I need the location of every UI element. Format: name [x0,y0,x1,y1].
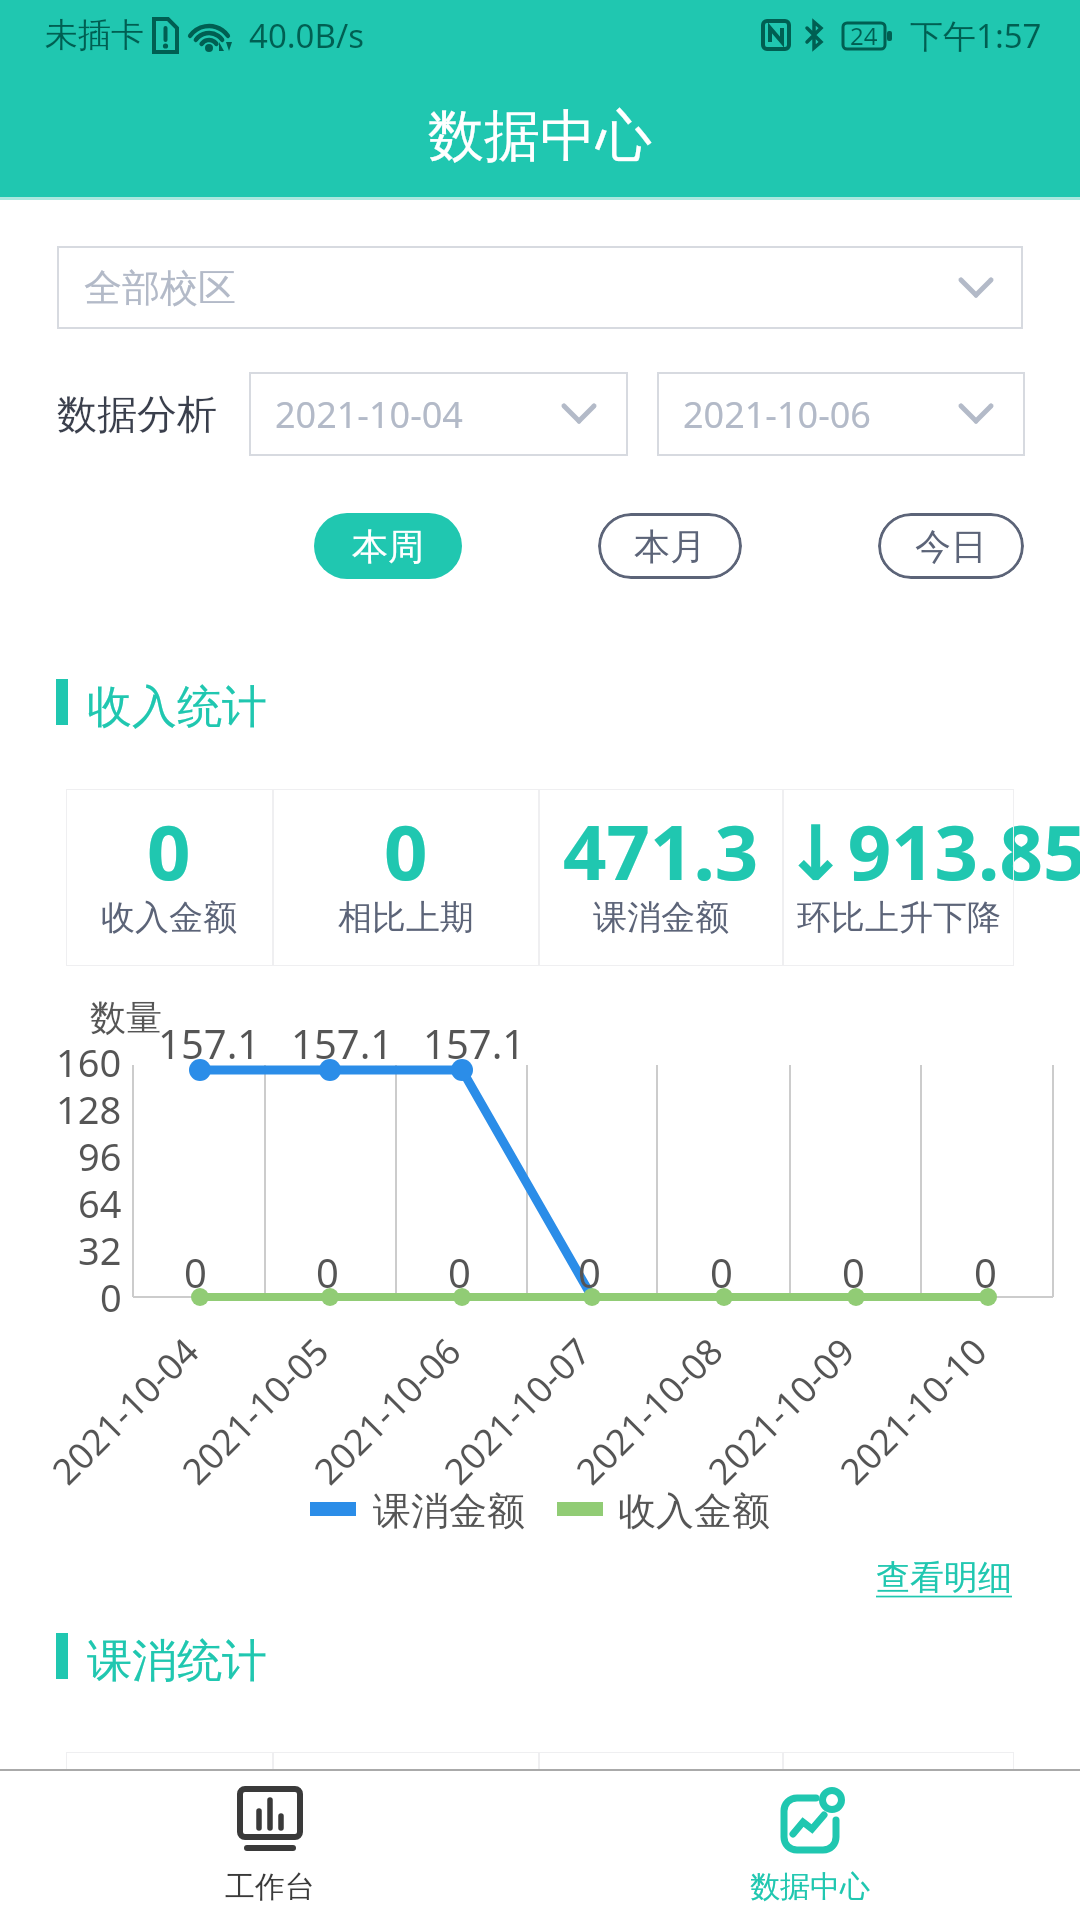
staticText: 收入统计 [87,679,267,725]
staticText: 0 [842,1245,865,1299]
staticText: 本周 [352,524,424,569]
staticText: 下午1:57 [910,13,1042,58]
staticText: 工作台 [225,1868,315,1906]
staticText: 24 [850,19,878,52]
staticText: 0 [384,799,428,903]
staticText: 数量 [90,995,162,1040]
button[interactable]: 本月 [598,513,742,579]
staticText: 收入金额 [618,1487,770,1531]
button[interactable]: 查看明细 [876,1556,1012,1599]
staticText: 2021-10-04 [275,390,463,439]
staticText: 40.0B/s [249,13,365,58]
staticText: 未插卡 [45,14,144,56]
staticText: 0 [100,1271,122,1318]
staticText: 2021-10-06 [683,390,871,439]
staticText: 96 [78,1130,122,1177]
staticText: 0 [448,1245,471,1299]
staticText: 0 [578,1245,601,1299]
button[interactable]: 今日 [878,513,1024,579]
staticText: 0 [147,799,191,903]
staticText: 课消金额 [373,1487,525,1531]
staticText: 全部校区 [84,264,236,312]
staticText: 课消金额 [593,896,729,939]
staticText: 收入金额 [101,896,237,939]
staticText: 查看明细 [876,1556,1012,1599]
button[interactable]: 选择校区 [57,246,1023,329]
staticText: 课消统计 [87,1633,267,1679]
staticText: 64 [78,1177,122,1224]
button[interactable]: 数据中心 [540,1771,1080,1920]
staticText: 数据分析 [57,389,217,439]
button[interactable]: 2021-10-06 [657,372,1025,456]
staticText: 0 [316,1245,339,1299]
staticText: 157.1 [158,1016,261,1070]
button[interactable]: 工作台 [0,1771,540,1920]
staticText: 本月 [634,524,706,569]
staticText: 128 [56,1083,122,1130]
staticText: 157.1 [423,1016,526,1070]
staticText: 环比上升下降 [797,896,1001,939]
staticText: 数据中心 [428,101,652,172]
button[interactable]: 本周 [314,513,462,579]
staticText: 0 [974,1245,997,1299]
staticText: 今日 [915,524,987,569]
staticText: 32 [78,1224,122,1271]
staticText: 160 [56,1036,122,1083]
staticText: 数据中心 [750,1868,870,1906]
staticText: 相比上期 [338,896,474,939]
staticText: 157.1 [291,1016,394,1070]
staticText: ↓913.85 [784,799,1014,903]
staticText: 0 [184,1245,207,1299]
staticText: 471.3 [563,799,759,903]
button[interactable]: 2021-10-04 [249,372,628,456]
staticText: 0 [710,1245,733,1299]
